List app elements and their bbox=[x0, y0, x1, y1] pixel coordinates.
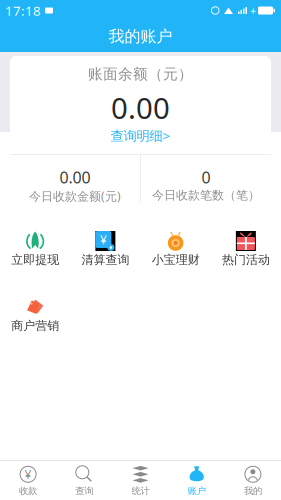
staticText: 账面余额（元） bbox=[88, 65, 193, 83]
staticText: 17:18 bbox=[5, 2, 41, 19]
button[interactable]: 立即提现 bbox=[0, 231, 70, 297]
button[interactable]: 热门活动 bbox=[211, 231, 281, 297]
staticText: ¥ bbox=[100, 231, 107, 247]
staticText: 今日收款金额(元) bbox=[29, 188, 121, 204]
staticText: 账户 bbox=[188, 485, 206, 497]
staticText: ¥ bbox=[25, 466, 32, 482]
button[interactable]: 查询明细> bbox=[10, 127, 271, 144]
staticText: 查询 bbox=[75, 485, 93, 497]
staticText: 热门活动 bbox=[222, 252, 270, 267]
staticText: 收款 bbox=[19, 485, 37, 497]
staticText: + bbox=[250, 3, 256, 18]
staticText: 0.00 bbox=[111, 88, 170, 127]
button[interactable]: 商户营销 bbox=[0, 297, 70, 363]
button[interactable]: 账户 bbox=[169, 461, 225, 500]
button[interactable]: 查询 bbox=[56, 461, 112, 500]
button[interactable]: ¥ bbox=[0, 461, 56, 500]
staticText: 商户营销 bbox=[11, 318, 59, 333]
staticText: 今日收款笔数（笔） bbox=[152, 188, 260, 203]
staticText: 查询明细> bbox=[110, 127, 170, 144]
button[interactable]: ¥ bbox=[70, 231, 140, 297]
staticText: 立即提现 bbox=[11, 252, 59, 267]
staticText: 清算查询 bbox=[81, 252, 129, 267]
staticText: 我的 bbox=[244, 485, 262, 497]
button[interactable]: 统计 bbox=[112, 461, 169, 500]
staticText: 我的账户 bbox=[108, 27, 172, 46]
button[interactable]: 我的 bbox=[225, 461, 281, 500]
staticText: 统计 bbox=[131, 485, 149, 497]
staticText: 小宝理财 bbox=[152, 252, 200, 267]
button[interactable]: 小宝理财 bbox=[140, 231, 211, 297]
staticText: 0 bbox=[201, 167, 210, 188]
staticText: 0.00 bbox=[59, 167, 90, 188]
